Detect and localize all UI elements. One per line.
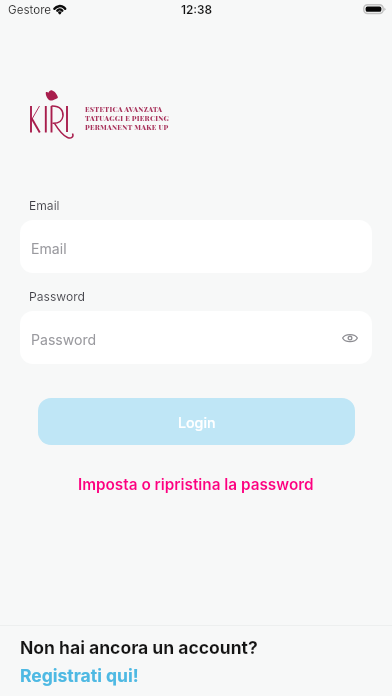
staticText: Registrati qui! [20, 665, 139, 686]
button[interactable]: Password [20, 311, 372, 364]
staticText: 12:38 [181, 3, 213, 17]
button[interactable]: Registrati qui! [20, 665, 139, 686]
staticText: Imposta o ripristina la password [78, 475, 314, 494]
staticText: Non hai ancora un account? [20, 637, 258, 658]
button[interactable]: Imposta o ripristina la password [0, 470, 392, 498]
staticText: ESTETICA AVANZATA [85, 104, 163, 113]
other: Show password [342, 333, 358, 344]
staticText: Login [178, 414, 216, 431]
button[interactable]: Email [20, 220, 372, 273]
staticText: Email [31, 240, 67, 257]
button[interactable]: Login [38, 398, 355, 445]
staticText: Email [29, 198, 60, 213]
staticText: Password [29, 289, 85, 304]
staticText: Gestore [8, 3, 52, 17]
staticText: TATUAGGI E PIERCING [85, 113, 170, 122]
staticText: Password [31, 331, 97, 348]
staticText: PERMANENT MAKE UP [85, 122, 169, 131]
